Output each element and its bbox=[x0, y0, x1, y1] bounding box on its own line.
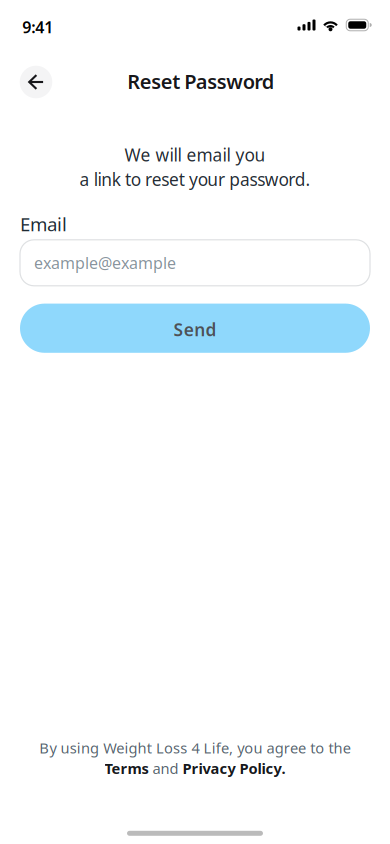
staticText: Email bbox=[20, 212, 67, 236]
button[interactable]: Back bbox=[14, 60, 58, 104]
staticText: example@example bbox=[34, 252, 176, 273]
staticText: Privacy Policy. bbox=[182, 758, 285, 778]
staticText: By using Weight Loss 4 Life, you agree t… bbox=[39, 738, 351, 757]
button[interactable]: Send bbox=[20, 304, 370, 353]
button[interactable]: Terms bbox=[104, 758, 148, 778]
button[interactable]: Email bbox=[20, 240, 370, 286]
staticText: and bbox=[152, 758, 178, 778]
button[interactable]: Privacy Policy. bbox=[182, 758, 285, 778]
staticText: Reset Password bbox=[127, 68, 275, 94]
staticText: Terms bbox=[104, 758, 148, 778]
staticText: Send bbox=[173, 318, 217, 341]
staticText: 9:41 bbox=[22, 16, 53, 38]
staticText: We will email you bbox=[124, 143, 265, 166]
staticText: a link to reset your password. bbox=[80, 168, 310, 191]
